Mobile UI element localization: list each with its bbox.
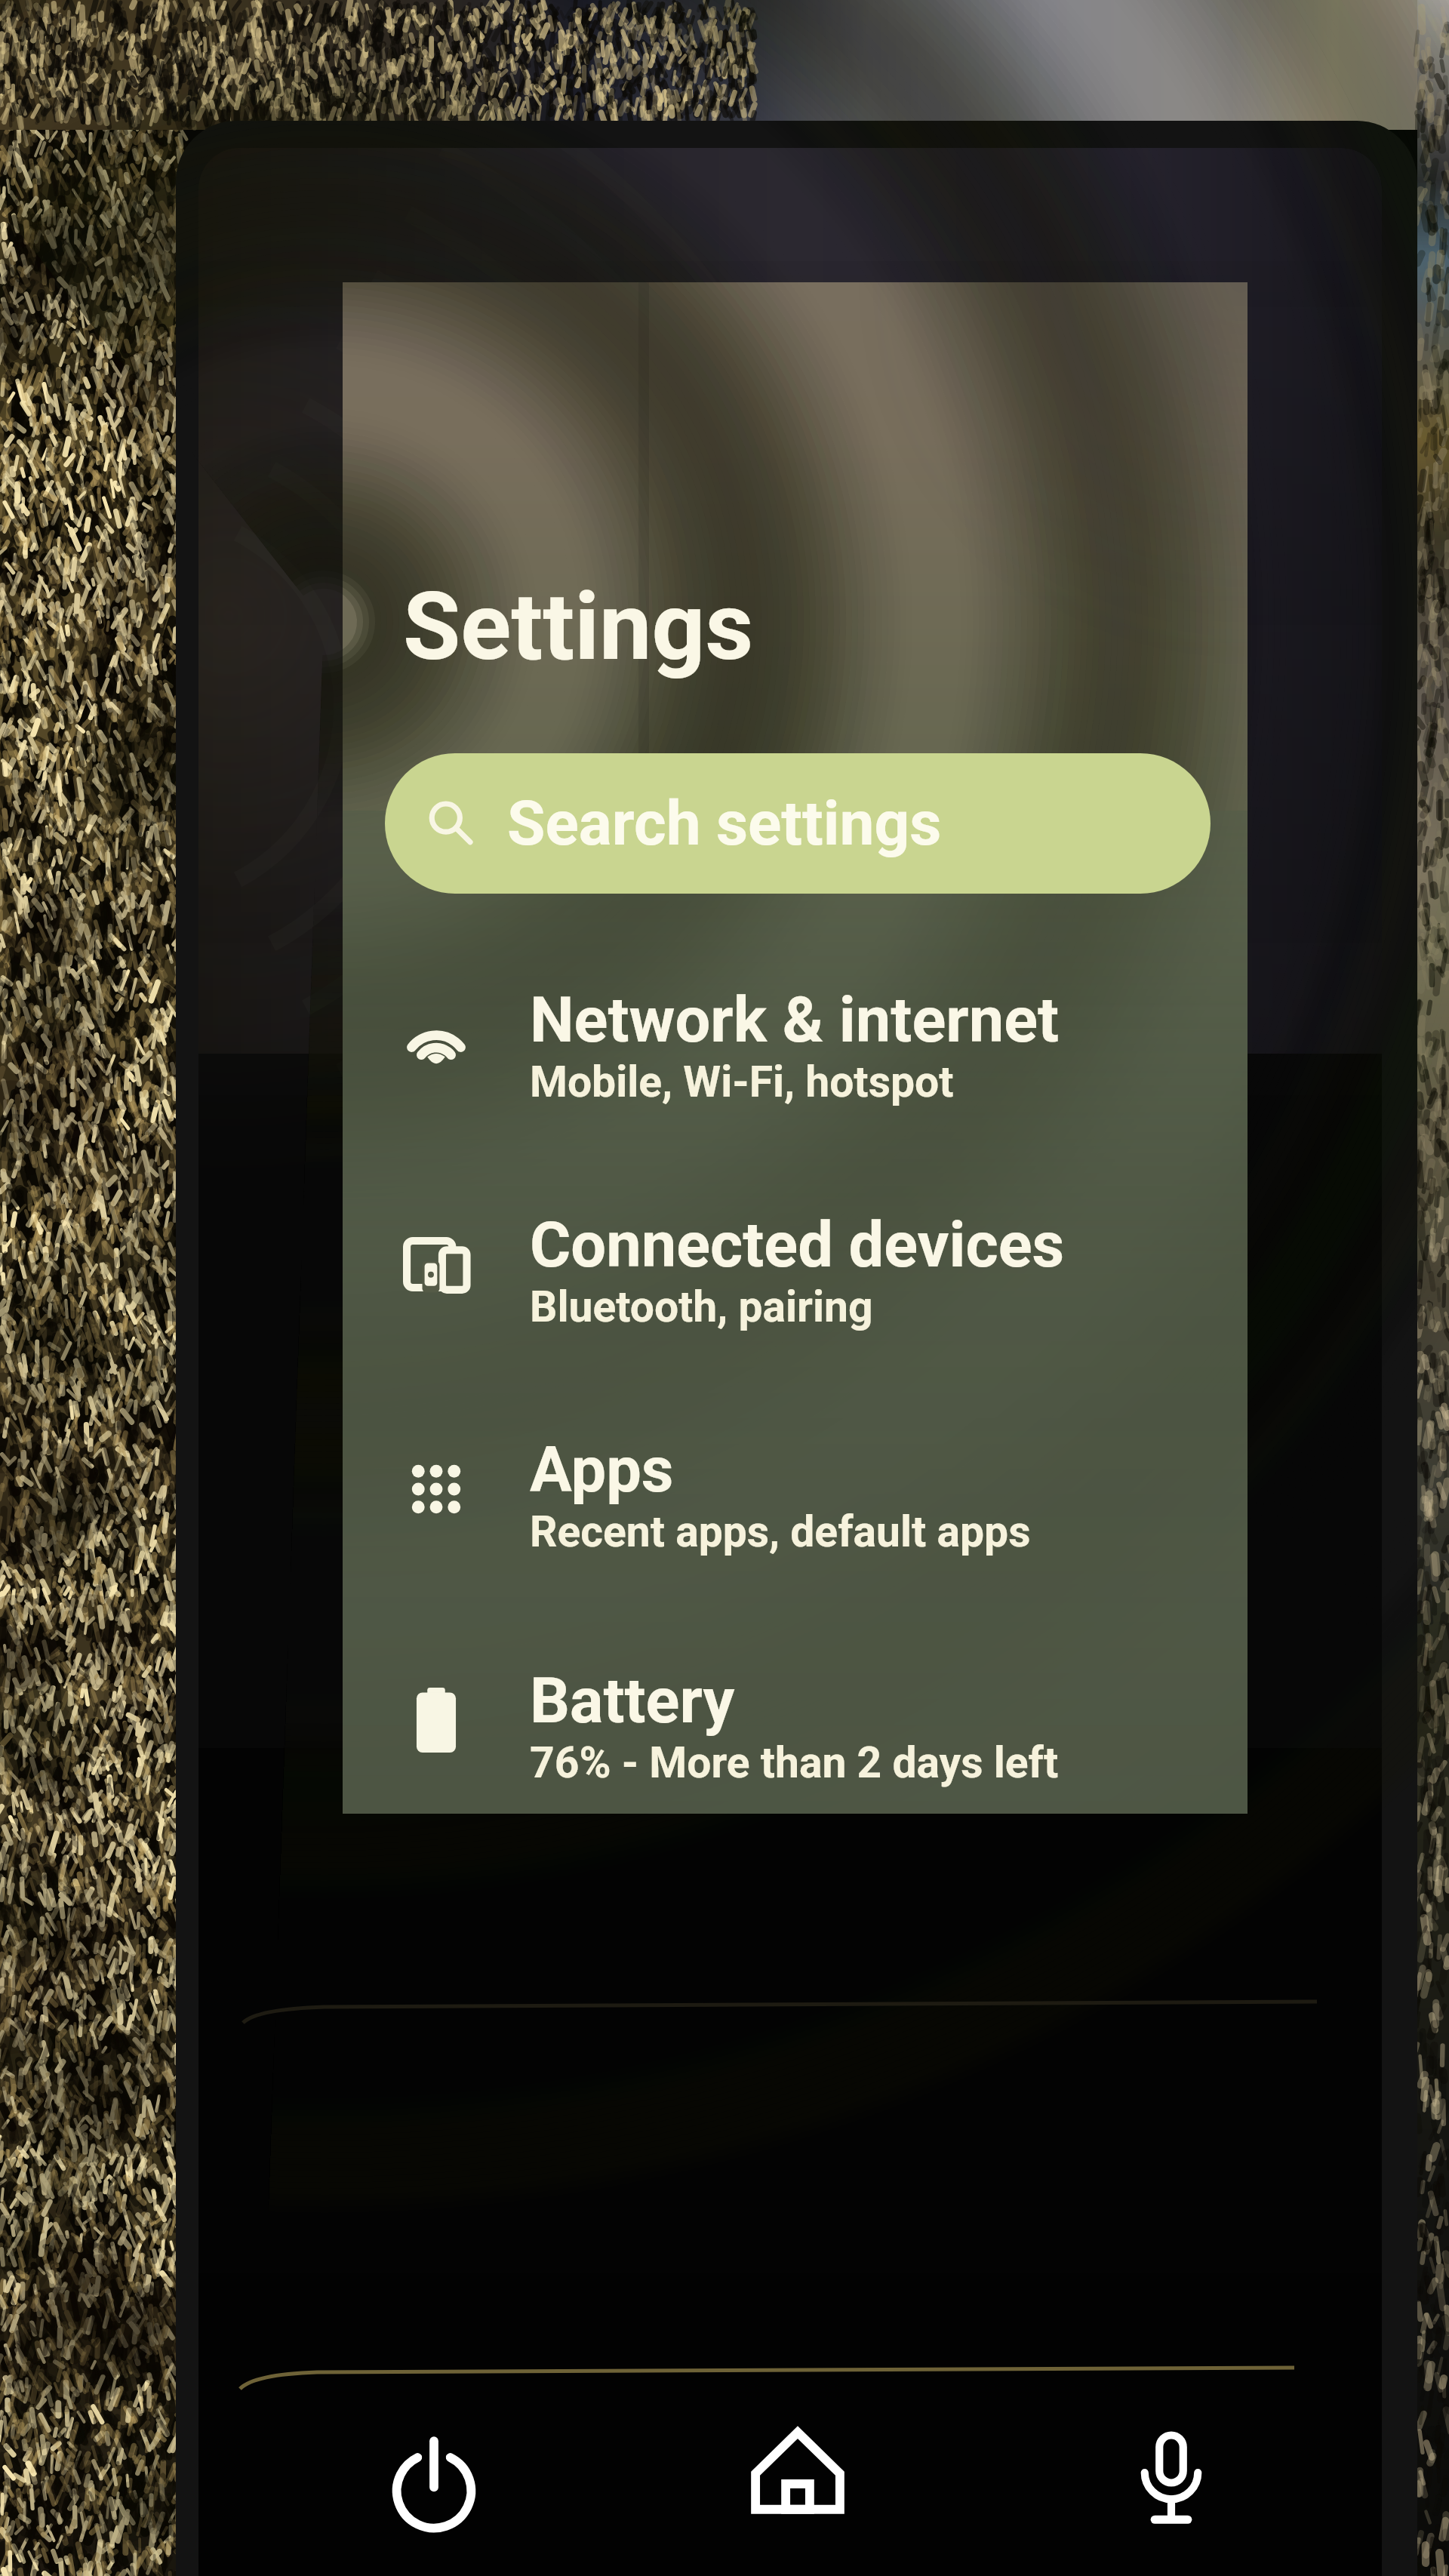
staticText: Search settings <box>507 787 942 860</box>
button[interactable]: Network & internet <box>343 970 1247 1121</box>
button[interactable]: Connected devices <box>343 1195 1247 1346</box>
button[interactable]: Apps <box>343 1420 1247 1571</box>
staticText: Mobile, Wi-Fi, hotspot <box>530 1057 954 1107</box>
staticText: 76% - More than 2 days left <box>530 1737 1059 1788</box>
button[interactable]: Power <box>336 2385 532 2576</box>
button[interactable]: Search settings <box>385 753 1211 894</box>
staticText: Apps <box>530 1433 674 1507</box>
button[interactable]: Battery <box>343 1651 1247 1802</box>
staticText: Network & internet <box>530 983 1060 1057</box>
staticText: Connected devices <box>530 1208 1065 1282</box>
staticText: Bluetooth, pairing <box>530 1282 873 1332</box>
staticText: Recent apps, default apps <box>530 1507 1031 1557</box>
button[interactable]: Assistant <box>1073 2381 1269 2576</box>
staticText: Battery <box>530 1664 735 1737</box>
button[interactable]: Home <box>700 2372 896 2568</box>
staticText: Settings <box>403 572 754 682</box>
